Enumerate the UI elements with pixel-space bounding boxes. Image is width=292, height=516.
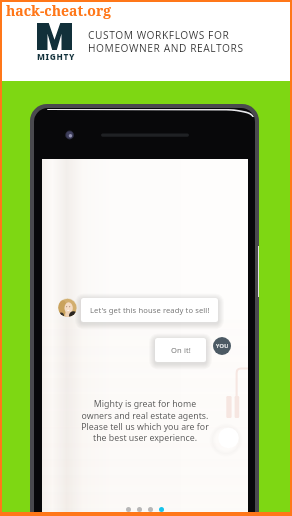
button[interactable]: [126, 507, 131, 512]
staticText: On it!: [171, 345, 191, 355]
staticText: hack-cheat.org: [6, 1, 112, 20]
button[interactable]: YOU: [213, 337, 231, 355]
button[interactable]: Let's get this house ready to sell!: [81, 298, 218, 322]
staticText: MIGHTY: [37, 51, 76, 62]
staticText: Mighty is great for home owners and real…: [81, 398, 209, 443]
staticText: CUSTOM WORKFLOWS FOR HOMEOWNER AND REALT…: [88, 28, 244, 55]
staticText: YOU: [216, 342, 229, 350]
button[interactable]: On it!: [155, 338, 206, 362]
button[interactable]: [137, 507, 142, 512]
button[interactable]: [159, 507, 164, 512]
staticText: Let's get this house ready to sell!: [90, 305, 210, 315]
button[interactable]: [148, 507, 153, 512]
